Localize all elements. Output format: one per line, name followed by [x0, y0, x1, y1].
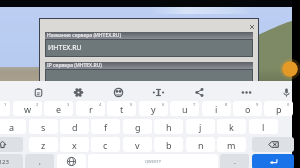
button[interactable]: Symbols — [0, 154, 23, 168]
button[interactable]: w — [13, 101, 42, 116]
staticText: h — [166, 121, 172, 133]
button[interactable]: r — [76, 101, 105, 116]
staticText: a — [9, 121, 15, 133]
button[interactable]: m — [217, 137, 246, 152]
button[interactable]: Space — [88, 154, 218, 168]
staticText: ?123 — [0, 158, 9, 166]
staticText: v — [135, 139, 140, 151]
button[interactable]: Change keyboard — [57, 154, 86, 168]
button[interactable]: a — [0, 119, 26, 134]
button[interactable]: Clipboard — [31, 85, 46, 100]
button[interactable] — [48, 69, 253, 83]
button[interactable]: o — [233, 101, 262, 116]
staticText: 1 — [4, 102, 7, 107]
staticText: ИНТЕХ.RU — [48, 43, 82, 53]
button[interactable]: q — [0, 101, 10, 116]
button[interactable]: Share — [192, 85, 207, 100]
button[interactable]: Comma — [25, 154, 54, 168]
staticText: 4 — [99, 102, 102, 107]
staticText: t — [120, 103, 124, 115]
staticText: Название сервера (ИНТЕХ.RU) — [47, 32, 122, 39]
staticText: c — [103, 139, 108, 151]
button[interactable]: ИНТЕХ.RU — [48, 39, 253, 57]
staticText: 9 — [256, 102, 259, 107]
button[interactable]: v — [123, 137, 152, 152]
staticText: o — [245, 103, 251, 115]
button[interactable]: l — [249, 119, 278, 134]
button[interactable]: k — [217, 119, 246, 134]
staticText: IP сервера (ИНТЕХ.RU) — [47, 62, 102, 69]
staticText: 2 — [36, 102, 39, 107]
button[interactable] — [252, 137, 294, 152]
button[interactable]: u — [170, 101, 199, 116]
staticText: r — [89, 103, 93, 115]
button[interactable]: Stickers — [111, 85, 126, 100]
staticText: n — [198, 139, 204, 151]
staticText: l — [262, 121, 265, 133]
staticText: p — [276, 103, 282, 115]
button[interactable]: Enter — [252, 154, 294, 168]
button[interactable]: Settings — [71, 85, 86, 100]
staticText: 5 — [130, 102, 133, 107]
button[interactable]: j — [186, 119, 215, 134]
button[interactable]: y — [139, 101, 168, 116]
staticText: k — [229, 121, 234, 133]
staticText: s — [41, 121, 46, 133]
staticText: y — [151, 103, 156, 115]
button[interactable]: Voice input — [279, 85, 294, 100]
button[interactable]: Close — [246, 21, 257, 32]
staticText: j — [199, 121, 202, 133]
button[interactable]: h — [154, 119, 183, 134]
button[interactable]: p — [264, 101, 293, 116]
staticText: , — [39, 157, 41, 167]
staticText: 0 — [287, 102, 290, 107]
button[interactable]: z — [29, 137, 58, 152]
staticText: QWERTY — [145, 159, 162, 164]
staticText: z — [41, 139, 46, 151]
button[interactable]: i — [202, 101, 231, 116]
staticText: 8 — [225, 102, 228, 107]
button[interactable]: Period — [220, 154, 249, 168]
button[interactable]: c — [91, 137, 120, 152]
staticText: g — [135, 121, 141, 133]
button[interactable]: e — [44, 101, 73, 116]
staticText: b — [166, 139, 172, 151]
staticText: i — [215, 103, 218, 115]
button[interactable]: t — [107, 101, 136, 116]
button[interactable]: n — [186, 137, 215, 152]
staticText: f — [104, 121, 108, 133]
button[interactable]: s — [29, 119, 58, 134]
button[interactable]: x — [60, 137, 89, 152]
staticText: e — [56, 103, 62, 115]
staticText: 7 — [193, 102, 196, 107]
staticText: w — [24, 103, 32, 115]
staticText: u — [182, 103, 188, 115]
button[interactable]: More options — [239, 85, 254, 100]
button[interactable]: d — [60, 119, 89, 134]
staticText: x — [72, 139, 77, 151]
button[interactable]: Text editing — [151, 85, 166, 100]
staticText: . — [234, 157, 236, 167]
button[interactable]: f — [91, 119, 120, 134]
staticText: m — [227, 139, 236, 151]
staticText: 3 — [67, 102, 70, 107]
button[interactable]: g — [123, 119, 152, 134]
button[interactable]: b — [154, 137, 183, 152]
button[interactable] — [0, 137, 23, 152]
staticText: 6 — [162, 102, 165, 107]
staticText: d — [72, 121, 78, 133]
